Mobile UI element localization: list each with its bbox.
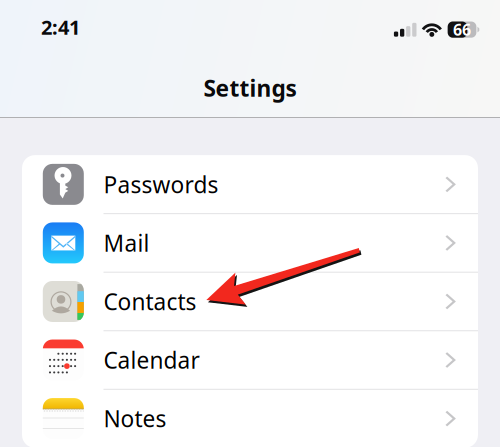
- staticText: Calendar: [103, 345, 199, 375]
- staticText: Notes: [103, 403, 166, 434]
- staticText: Mail: [103, 228, 149, 258]
- staticText: Settings: [203, 73, 296, 103]
- staticText: Contacts: [103, 286, 196, 316]
- button[interactable]: Calendar: [22, 331, 478, 389]
- button[interactable]: Passwords: [22, 155, 478, 214]
- button[interactable]: Mail: [22, 214, 478, 272]
- button[interactable]: Contacts: [22, 272, 478, 331]
- button[interactable]: Notes: [22, 389, 478, 447]
- staticText: Passwords: [103, 169, 218, 199]
- staticText: 2:41: [41, 14, 80, 40]
- staticText: 66: [453, 19, 471, 40]
